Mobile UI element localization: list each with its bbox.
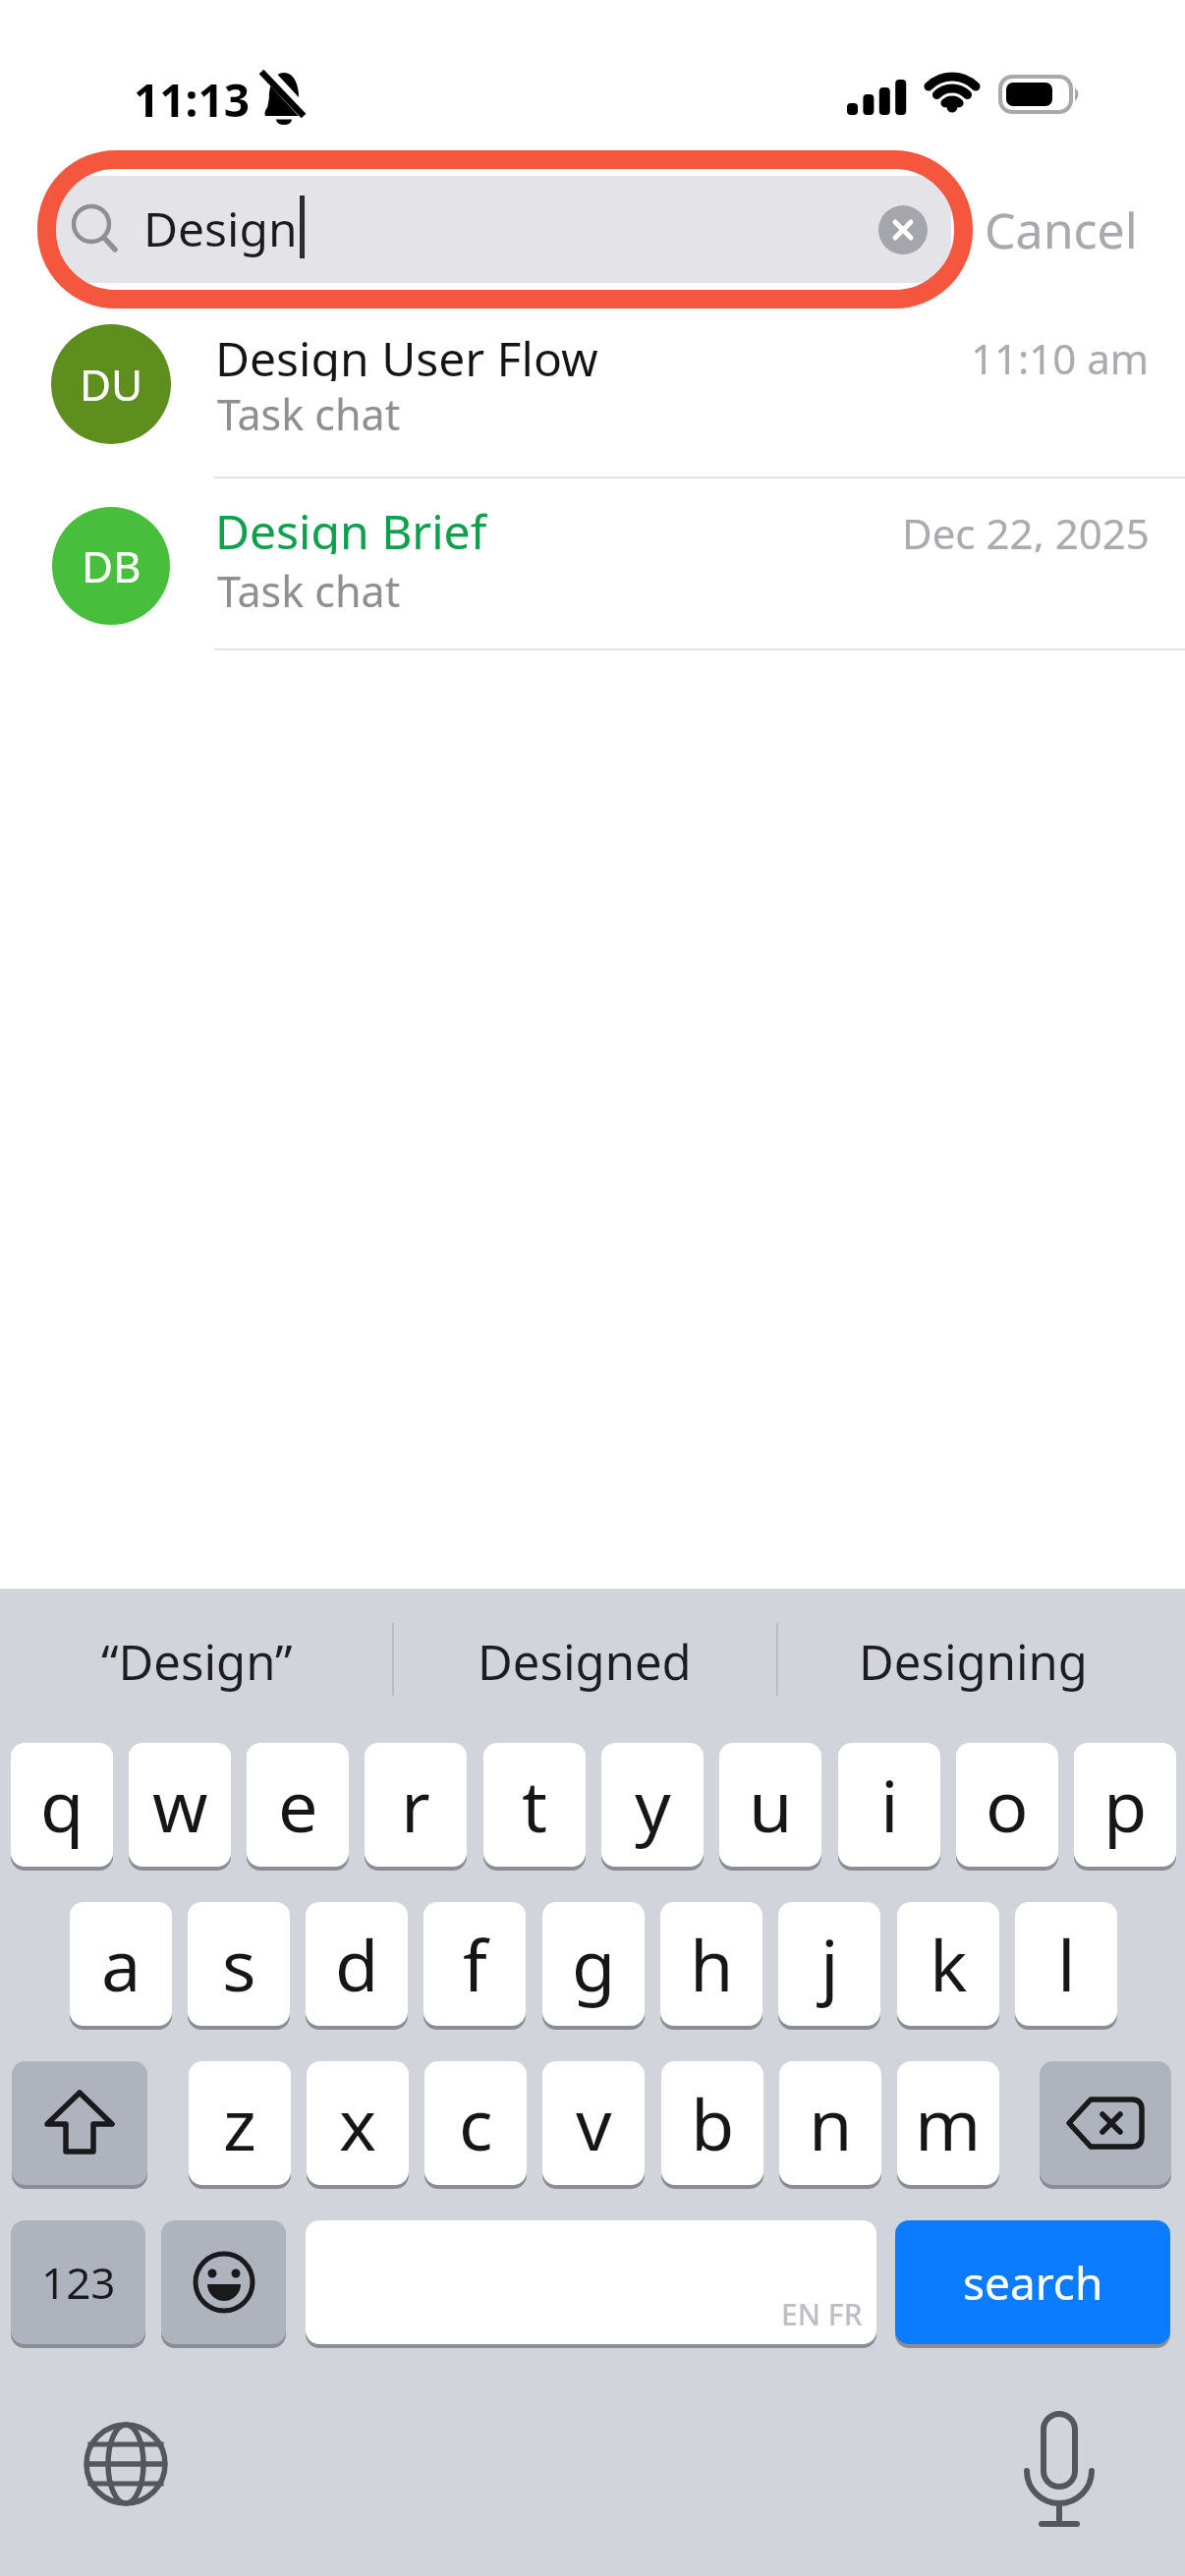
staticText: 11:13 (134, 69, 251, 124)
button[interactable]: e (247, 1743, 349, 1867)
button[interactable]: Designing (859, 1629, 1088, 1695)
staticText: Design User Flow (215, 326, 598, 381)
button[interactable] (56, 176, 951, 283)
button[interactable] (12, 2061, 147, 2185)
button[interactable]: 123 (11, 2220, 145, 2344)
button[interactable]: d (306, 1902, 408, 2026)
button[interactable]: Cancel (985, 196, 1138, 257)
button[interactable]: v (542, 2061, 645, 2185)
staticText: 123 (41, 2253, 116, 2312)
button[interactable]: q (11, 1743, 113, 1867)
button[interactable]: p (1074, 1743, 1176, 1867)
staticText: f (463, 1916, 487, 2012)
button[interactable]: “Design” (101, 1629, 293, 1695)
button[interactable]: y (601, 1743, 704, 1867)
staticText: Cancel (985, 196, 1138, 257)
staticText: l (1057, 1916, 1076, 2012)
staticText: Designing (859, 1629, 1088, 1695)
staticText: q (40, 1757, 85, 1853)
button[interactable]: g (542, 1902, 645, 2026)
staticText: s (222, 1916, 256, 2012)
staticText: r (401, 1757, 430, 1853)
button[interactable]: s (188, 1902, 290, 2026)
button[interactable]: Designed (478, 1629, 692, 1695)
staticText: Design Brief (215, 499, 487, 554)
button[interactable]: c (424, 2061, 527, 2185)
staticText: m (915, 2075, 982, 2171)
staticText: b (691, 2075, 735, 2171)
button[interactable]: DB (0, 477, 1185, 649)
staticText: z (223, 2075, 256, 2171)
staticText: p (1103, 1757, 1148, 1853)
staticText: Design (143, 196, 298, 257)
staticText: j (820, 1916, 839, 2012)
staticText: w (152, 1757, 208, 1853)
button[interactable]: r (365, 1743, 467, 1867)
staticText: “Design” (101, 1629, 293, 1695)
staticText: v (576, 2075, 612, 2171)
staticText: c (459, 2075, 493, 2171)
button[interactable]: b (661, 2061, 763, 2185)
staticText: DB (82, 536, 141, 595)
button[interactable]: DU (0, 312, 1185, 477)
button[interactable]: m (897, 2061, 999, 2185)
button[interactable]: EN FR (306, 2220, 876, 2344)
button[interactable]: o (956, 1743, 1058, 1867)
staticText: search (963, 2252, 1103, 2314)
button[interactable]: t (483, 1743, 586, 1867)
button[interactable]: w (129, 1743, 231, 1867)
staticText: k (930, 1916, 968, 2012)
button[interactable]: n (779, 2061, 881, 2185)
button[interactable] (77, 2415, 175, 2513)
staticText: i (880, 1757, 899, 1853)
staticText: o (986, 1757, 1029, 1853)
button[interactable]: h (660, 1902, 762, 2026)
staticText: EN FR (781, 2294, 863, 2334)
button[interactable] (1040, 2061, 1171, 2185)
staticText: t (522, 1757, 547, 1853)
staticText: n (809, 2075, 853, 2171)
staticText: DU (80, 355, 143, 414)
staticText: y (635, 1757, 671, 1853)
button[interactable]: u (719, 1743, 821, 1867)
button[interactable]: l (1015, 1902, 1117, 2026)
button[interactable]: j (778, 1902, 880, 2026)
staticText: u (749, 1757, 793, 1853)
staticText: Designed (478, 1629, 692, 1695)
staticText: e (278, 1757, 318, 1853)
button[interactable]: search (895, 2220, 1170, 2344)
staticText: Task chat (217, 385, 401, 434)
button[interactable]: i (838, 1743, 940, 1867)
staticText: Dec 22, 2025 (902, 505, 1150, 552)
button[interactable]: a (70, 1902, 172, 2026)
staticText: Task chat (217, 562, 401, 611)
staticText: a (101, 1916, 141, 2012)
button[interactable]: z (189, 2061, 291, 2185)
staticText: x (339, 2075, 377, 2171)
button[interactable]: f (423, 1902, 526, 2026)
button[interactable] (1010, 2402, 1108, 2535)
staticText: 11:10 am (971, 330, 1150, 377)
button[interactable]: x (307, 2061, 409, 2185)
staticText: d (335, 1916, 379, 2012)
staticText: g (572, 1916, 616, 2012)
button[interactable]: k (897, 1902, 999, 2026)
button[interactable] (161, 2220, 286, 2344)
staticText: h (690, 1916, 734, 2012)
